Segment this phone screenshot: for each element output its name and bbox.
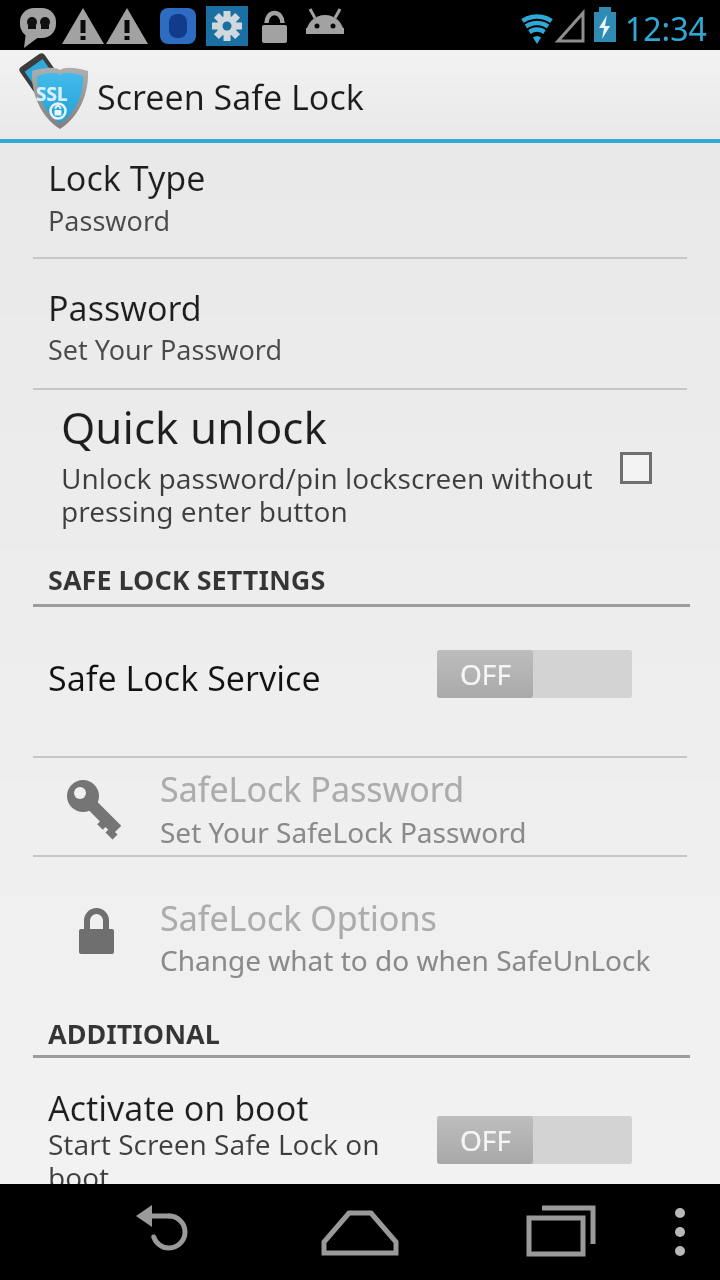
button[interactable] (312, 1184, 408, 1280)
staticText: ADDITIONAL (48, 1015, 220, 1052)
staticText: Screen Safe Lock (97, 74, 364, 120)
button[interactable] (0, 1058, 720, 1184)
staticText: SAFE LOCK SETTINGS (48, 561, 326, 598)
staticText: Set Your Password (48, 331, 283, 368)
button[interactable] (512, 1184, 608, 1280)
button[interactable] (0, 388, 720, 545)
button[interactable]: SSL (0, 50, 720, 139)
staticText: Start Screen Safe Lock on boot (48, 1125, 380, 1184)
staticText: Password (48, 202, 171, 239)
button[interactable] (0, 756, 720, 855)
staticText: SafeLock Options (160, 895, 437, 941)
button[interactable]: OFF (437, 1116, 632, 1164)
button[interactable] (0, 258, 720, 388)
staticText: Quick unlock (61, 397, 327, 457)
button[interactable]: OFF (437, 650, 632, 698)
staticText: Safe Lock Service (48, 655, 321, 701)
staticText: 12:34 (625, 7, 707, 51)
staticText: OFF (460, 1121, 511, 1159)
staticText: Change what to do when SafeUnLock (160, 941, 651, 979)
button[interactable] (0, 143, 720, 258)
staticText: Lock Type (48, 155, 206, 201)
button[interactable] (0, 605, 720, 756)
staticText: SSL (36, 81, 68, 107)
button[interactable] (117, 1184, 213, 1280)
staticText: Unlock password/pin lockscreen without p… (61, 459, 593, 530)
staticText: Activate on boot (48, 1085, 309, 1131)
staticText: SafeLock Password (160, 766, 465, 812)
staticText: OFF (460, 655, 511, 693)
staticText: Set Your SafeLock Password (160, 813, 527, 851)
button[interactable] (0, 855, 720, 1015)
staticText: Password (48, 285, 202, 331)
button[interactable] (648, 1200, 712, 1264)
